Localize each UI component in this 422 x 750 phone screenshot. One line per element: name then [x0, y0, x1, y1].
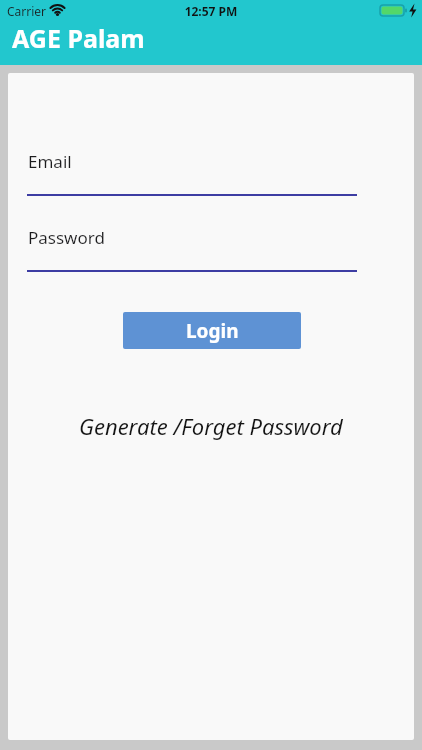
staticText: Login: [186, 318, 239, 344]
staticText: 12:57 PM: [0, 3, 422, 19]
button[interactable]: Login: [123, 312, 301, 349]
staticText: AGE Palam: [12, 21, 145, 55]
staticText: Carrier: [7, 3, 47, 19]
staticText: Password: [28, 226, 105, 249]
staticText: Generate /Forget Password: [79, 411, 343, 441]
button[interactable]: Generate /Forget Password: [8, 411, 414, 441]
staticText: Email: [28, 150, 72, 173]
